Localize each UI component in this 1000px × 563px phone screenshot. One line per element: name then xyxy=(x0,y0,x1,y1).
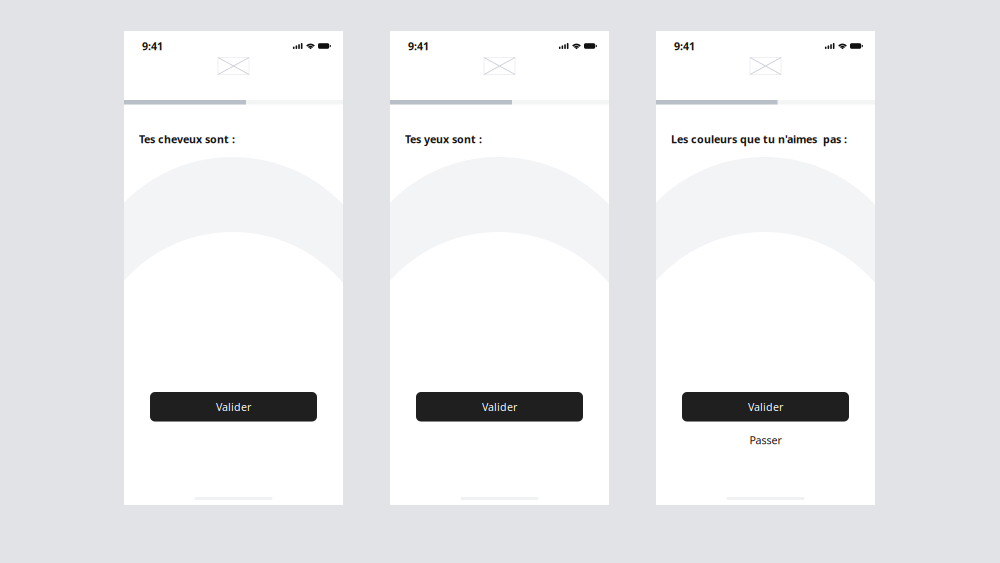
button[interactable]: Valider xyxy=(682,392,849,421)
staticText: 9:41 xyxy=(408,39,429,53)
button[interactable]: Valider xyxy=(150,392,317,421)
staticText: Tes yeux sont : xyxy=(405,132,482,146)
staticText: Valider xyxy=(482,400,517,414)
staticText: Valider xyxy=(216,400,251,414)
staticText: 9:41 xyxy=(674,39,695,53)
staticText: Passer xyxy=(749,433,781,447)
staticText: Les couleurs que tu n'aimes pas : xyxy=(671,132,847,146)
button[interactable]: Valider xyxy=(416,392,583,421)
staticText: Tes cheveux sont : xyxy=(139,132,235,146)
button[interactable]: Passer xyxy=(725,432,805,448)
staticText: Valider xyxy=(748,400,783,414)
staticText: 9:41 xyxy=(142,39,163,53)
